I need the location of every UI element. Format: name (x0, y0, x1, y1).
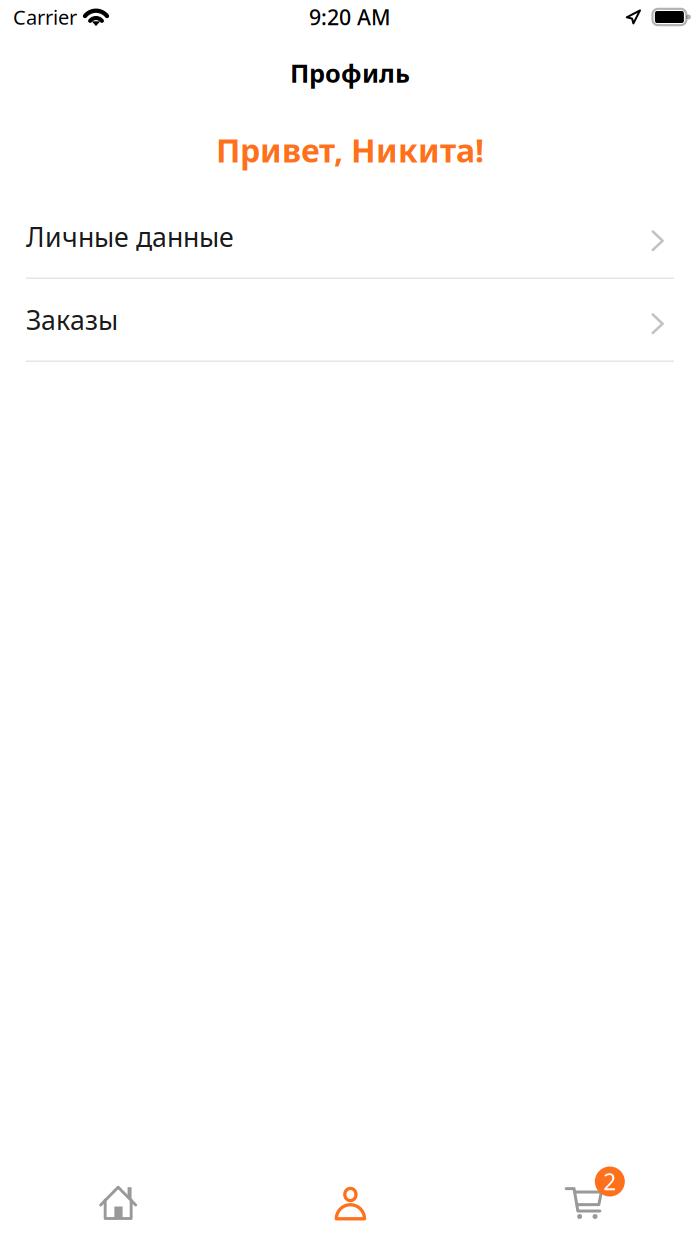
staticText: Профиль (290, 56, 410, 90)
staticText: Привет, Никита! (216, 129, 484, 171)
staticText: 2 (603, 1166, 616, 1196)
button[interactable]: Заказы (0, 279, 700, 362)
button[interactable]: Profile (233, 1160, 467, 1244)
staticText: 9:20 AM (309, 3, 391, 31)
staticText: Carrier (13, 4, 77, 30)
button[interactable]: Home (0, 1160, 233, 1244)
button[interactable]: Cart, 2 items (467, 1160, 700, 1244)
staticText: Личные данные (26, 219, 234, 254)
staticText: Заказы (26, 302, 118, 337)
button[interactable]: Личные данные (0, 196, 700, 279)
